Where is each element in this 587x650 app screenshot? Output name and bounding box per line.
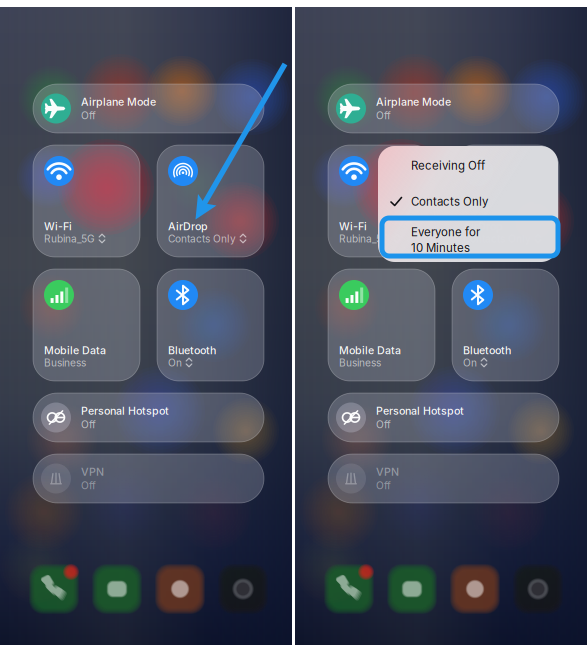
button[interactable]: Receiving Off: [378, 146, 558, 185]
staticText: Bluetooth: [168, 344, 216, 357]
button[interactable]: Bluetooth: [452, 269, 559, 381]
button[interactable]: VPN: [33, 454, 264, 503]
button[interactable]: Bluetooth: [157, 269, 264, 381]
staticText: Contacts Only: [463, 233, 531, 245]
staticText: Wi-Fi: [339, 220, 367, 233]
staticText: Mobile Data: [339, 344, 401, 357]
staticText: Receiving Off: [411, 159, 485, 172]
button[interactable]: Wi-Fi: [33, 145, 140, 257]
staticText: Mobile Data: [44, 344, 106, 357]
staticText: 10 Minutes: [411, 241, 470, 255]
staticText: Bluetooth: [463, 344, 511, 357]
staticText: On: [463, 357, 477, 369]
button[interactable]: VPN: [328, 454, 559, 503]
button[interactable]: Wi-Fi: [328, 145, 435, 257]
staticText: Wi-Fi: [44, 220, 72, 233]
staticText: Off: [81, 418, 96, 431]
button[interactable]: AirDrop: [452, 145, 559, 257]
staticText: AirDrop: [168, 220, 208, 233]
staticText: Airplane Mode: [81, 95, 156, 108]
staticText: Contacts Only: [411, 195, 488, 208]
staticText: Off: [81, 109, 96, 122]
staticText: Business: [339, 357, 381, 369]
staticText: VPN: [81, 465, 104, 478]
button[interactable]: Personal Hotspot: [328, 393, 559, 442]
staticText: Airplane Mode: [376, 95, 451, 108]
staticText: Off: [376, 479, 391, 492]
staticText: VPN: [376, 465, 399, 478]
staticText: Rubina_5G: [339, 233, 390, 245]
button[interactable]: Mobile Data: [328, 269, 435, 381]
button[interactable]: Airplane Mode: [33, 84, 264, 133]
button[interactable]: Personal Hotspot: [33, 393, 264, 442]
staticText: Rubina_5G: [44, 233, 95, 245]
staticText: On: [168, 357, 182, 369]
staticText: Personal Hotspot: [81, 404, 169, 417]
staticText: Off: [376, 418, 391, 431]
staticText: Contacts Only: [168, 233, 236, 245]
button[interactable]: Mobile Data: [33, 269, 140, 381]
staticText: AirDrop: [463, 220, 503, 233]
staticText: Personal Hotspot: [376, 404, 464, 417]
staticText: Business: [44, 357, 86, 369]
staticText: Off: [376, 109, 391, 122]
button[interactable]: Contacts Only: [378, 185, 558, 218]
button[interactable]: Everyone for: [378, 218, 558, 262]
button[interactable]: AirDrop: [157, 145, 264, 257]
staticText: Off: [81, 479, 96, 492]
button[interactable]: Airplane Mode: [328, 84, 559, 133]
staticText: Everyone for: [411, 225, 480, 239]
